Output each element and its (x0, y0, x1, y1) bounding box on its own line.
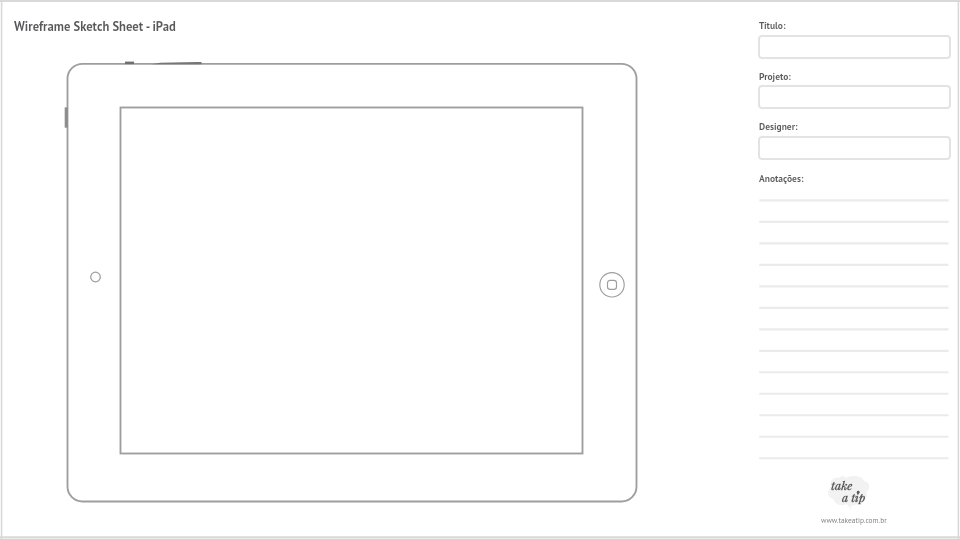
staticText: Projeto: (759, 70, 791, 82)
button[interactable]: Home button (600, 273, 624, 297)
staticText: www.takeatip.com.br (821, 515, 887, 525)
staticText: Wireframe Sketch Sheet - iPad (14, 18, 176, 34)
staticText: Designer: (759, 120, 798, 132)
staticText: take (831, 477, 853, 493)
staticText: a tip (842, 489, 866, 505)
button[interactable]: Título field (758, 35, 951, 59)
button[interactable]: Designer field (758, 136, 951, 160)
button[interactable]: iPad screen sketch area (121, 108, 582, 453)
staticText: Anotações: (759, 172, 804, 184)
button[interactable]: Projeto field (758, 85, 951, 109)
button[interactable]: Anotações, ruled writing area (759, 190, 949, 465)
button[interactable]: www.takeatip.com.br (821, 515, 887, 525)
staticText: Título: (759, 19, 786, 31)
